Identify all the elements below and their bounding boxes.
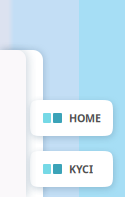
button[interactable]: HOME: [30, 100, 113, 136]
staticText: KYCI: [69, 162, 93, 176]
button[interactable]: KYCI: [30, 151, 113, 187]
staticText: HOME: [69, 111, 101, 125]
